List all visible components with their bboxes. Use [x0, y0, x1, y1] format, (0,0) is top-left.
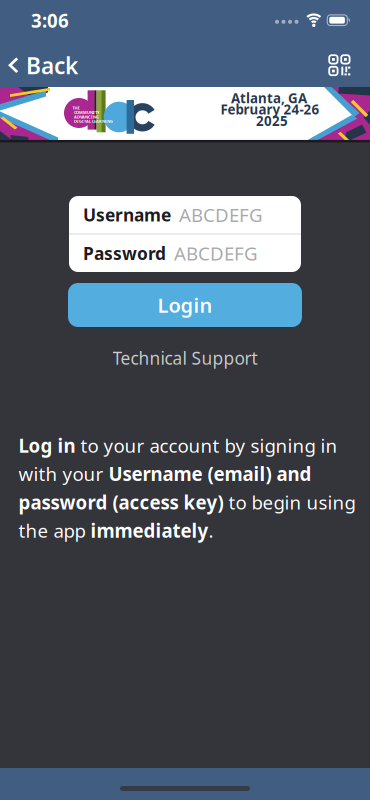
staticText: the app immediately.: [18, 518, 213, 543]
staticText: THE: [72, 105, 79, 111]
button[interactable]: Username: [69, 196, 301, 233]
staticText: DIGITAL LEARNING: [74, 119, 113, 124]
staticText: ABCDEFG: [174, 241, 258, 266]
button[interactable]: Scan QR code: [329, 55, 350, 76]
staticText: password (access key) to begin using: [18, 490, 355, 515]
staticText: Log in to your account by signing in: [18, 433, 337, 458]
button[interactable]: Technical Support: [112, 346, 257, 369]
staticText: Atlanta, GA: [231, 89, 307, 107]
staticText: Username: [83, 203, 171, 226]
staticText: Technical Support: [112, 346, 257, 369]
staticText: Password: [83, 242, 166, 265]
staticText: COMMUNITY: [74, 110, 100, 115]
staticText: February 24-26: [220, 100, 319, 118]
button[interactable]: Back: [8, 50, 78, 80]
staticText: Back: [26, 50, 78, 80]
staticText: ABCDEFG: [179, 202, 263, 227]
staticText: with your Username (email) and: [18, 461, 311, 486]
staticText: 2025: [256, 112, 288, 130]
staticText: ADVANCING: [74, 114, 99, 119]
staticText: Login: [157, 292, 212, 318]
staticText: 3:06: [31, 8, 69, 33]
button[interactable]: Password: [69, 234, 301, 272]
button[interactable]: Login: [68, 283, 302, 327]
